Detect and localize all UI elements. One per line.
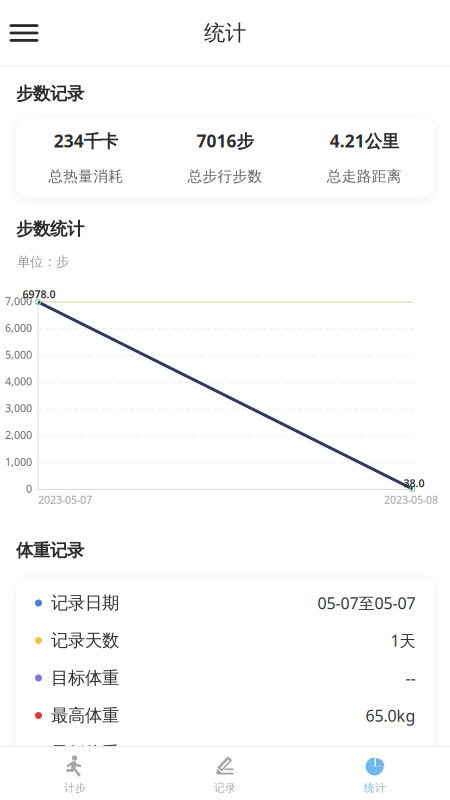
staticText: 6978.0 bbox=[22, 287, 55, 301]
staticText: 记录天数 bbox=[51, 630, 119, 651]
button[interactable]: 记录 bbox=[150, 746, 300, 800]
staticText: 总步行步数 bbox=[187, 167, 262, 185]
staticText: 步数记录 bbox=[16, 83, 84, 104]
staticText: 4.21公里 bbox=[330, 129, 399, 152]
staticText: -- bbox=[405, 667, 415, 689]
staticText: 2023-05-08 bbox=[384, 492, 438, 507]
button[interactable]: 计步 bbox=[0, 746, 150, 800]
staticText: 5,000 bbox=[5, 347, 32, 362]
staticText: 65.0kg bbox=[365, 742, 415, 764]
button[interactable]: 统计 bbox=[300, 746, 450, 800]
staticText: 计步 bbox=[64, 781, 86, 795]
staticText: 目标体重 bbox=[51, 667, 119, 689]
staticText: 统计 bbox=[204, 20, 246, 46]
staticText: 7016步 bbox=[196, 129, 253, 152]
staticText: 体重记录 bbox=[16, 540, 84, 561]
staticText: 最低体重 bbox=[51, 742, 119, 764]
staticText: 最高体重 bbox=[51, 705, 119, 726]
staticText: 统计 bbox=[364, 781, 386, 795]
staticText: 05-07至05-07 bbox=[317, 592, 415, 614]
staticText: 记录日期 bbox=[51, 592, 119, 614]
staticText: 7,000 bbox=[5, 294, 32, 308]
staticText: 总热量消耗 bbox=[48, 167, 123, 185]
staticText: 步数统计 bbox=[16, 218, 84, 240]
staticText: 38.0 bbox=[403, 476, 424, 490]
staticText: 4,000 bbox=[5, 374, 32, 388]
staticText: 总走路距离 bbox=[327, 167, 402, 185]
staticText: 记录 bbox=[214, 781, 236, 795]
staticText: 单位：步 bbox=[17, 254, 69, 270]
staticText: 0 bbox=[26, 481, 32, 496]
staticText: 3,000 bbox=[5, 401, 32, 415]
button[interactable]: Menu bbox=[0, 11, 48, 55]
staticText: 2,000 bbox=[5, 428, 32, 442]
staticText: 65.0kg bbox=[365, 705, 415, 726]
staticText: 234千卡 bbox=[54, 129, 118, 152]
staticText: 1,000 bbox=[5, 455, 32, 469]
staticText: 1天 bbox=[390, 630, 415, 651]
staticText: 2023-05-07 bbox=[38, 492, 92, 507]
staticText: 6,000 bbox=[5, 321, 32, 335]
